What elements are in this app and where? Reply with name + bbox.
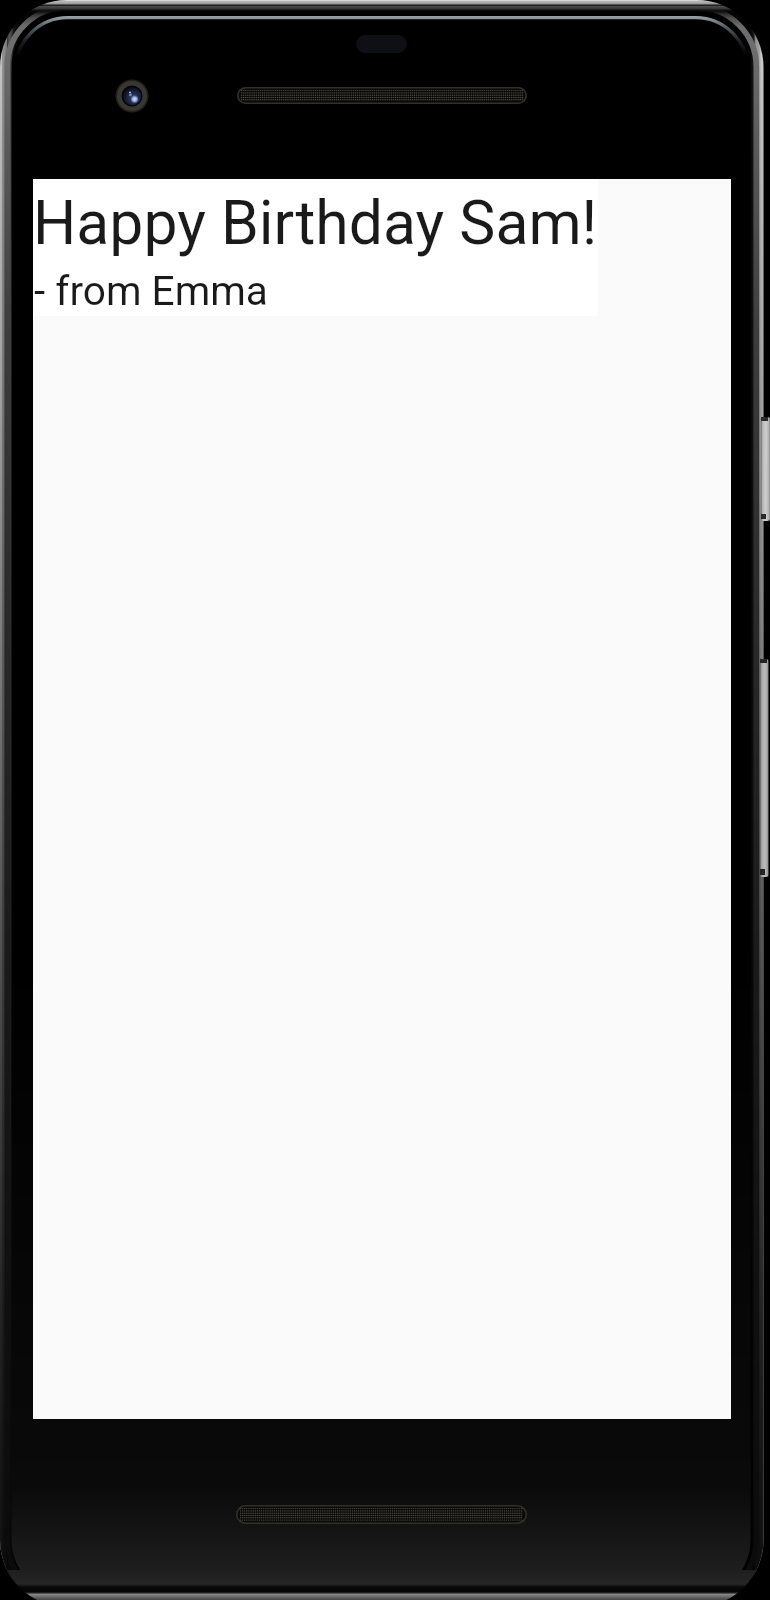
staticText: - from Emma (34, 267, 434, 315)
staticText: Happy Birthday Sam! (33, 188, 598, 259)
button[interactable]: Happy Birthday Sam! (33, 179, 598, 316)
